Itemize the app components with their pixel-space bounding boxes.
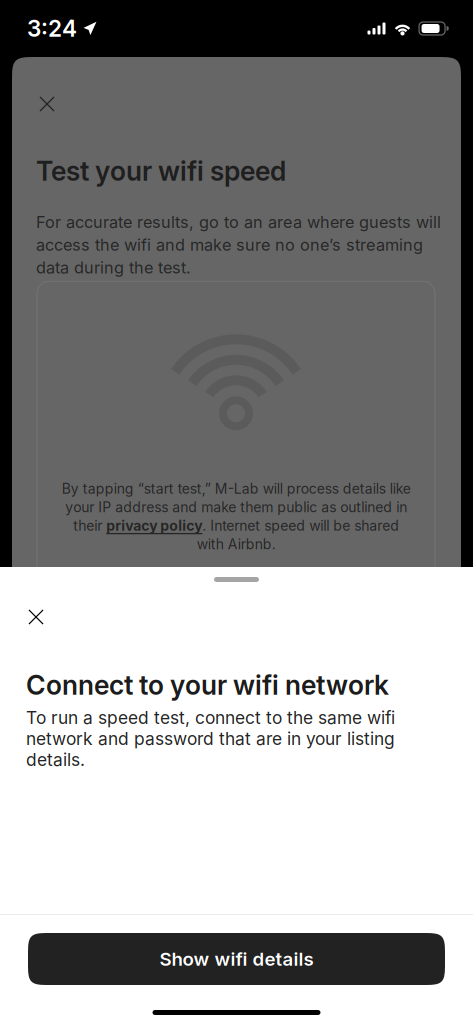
staticText: For accurate results, go to an area wher… — [36, 212, 441, 277]
button[interactable]: Close — [14, 595, 58, 639]
button[interactable]: Show wifi details — [28, 933, 445, 985]
staticText: To run a speed test, connect to the same… — [26, 707, 395, 770]
staticText: By tapping “start test,” M-Lab will proc… — [61, 480, 410, 553]
staticText: 3:24 — [27, 15, 77, 42]
staticText: Test your wifi speed — [36, 155, 286, 187]
staticText: Connect to your wifi network — [26, 669, 389, 701]
button[interactable]: Close — [25, 82, 69, 126]
staticText: Show wifi details — [159, 948, 313, 970]
